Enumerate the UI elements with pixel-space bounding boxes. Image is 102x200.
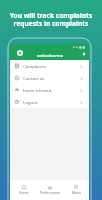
staticText: Invite a friend: [23, 87, 52, 93]
button[interactable]: Invite a friend: [10, 84, 89, 96]
button[interactable]: Contact us: [10, 72, 89, 84]
staticText: Performance: [40, 190, 61, 194]
button[interactable]: Logout: [10, 96, 89, 108]
staticText: Complaints: [23, 63, 46, 69]
staticText: Contact us: [23, 75, 45, 81]
staticText: You will track complaints requests in co…: [4, 11, 98, 28]
button[interactable]: Home: [10, 180, 37, 200]
staticText: Home: [19, 190, 29, 194]
button[interactable]: Notifications: [81, 51, 87, 57]
button[interactable]: Profile: [17, 50, 23, 56]
button[interactable]: Complaints: [10, 60, 89, 72]
staticText: Logout: [23, 99, 38, 105]
button[interactable]: Performance: [37, 180, 63, 200]
staticText: Menu: [72, 190, 81, 194]
button[interactable]: Menu: [63, 180, 89, 200]
staticText: anitasharma: [37, 52, 63, 58]
